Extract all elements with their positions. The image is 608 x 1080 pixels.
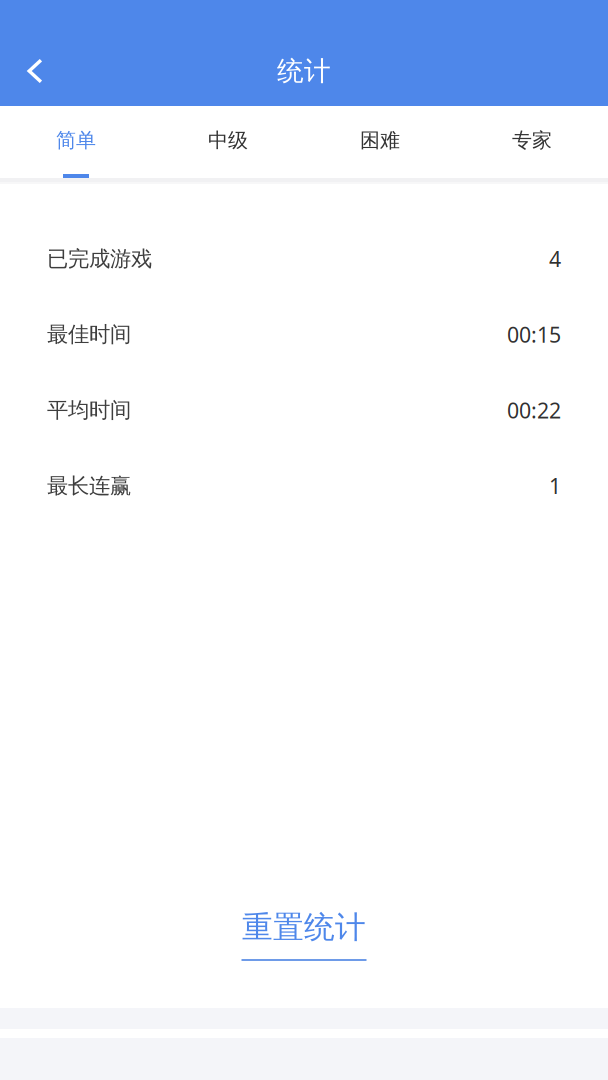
staticText: 00:22 — [507, 396, 561, 424]
button[interactable]: 重置统计 — [223, 908, 384, 975]
staticText: 平均时间 — [47, 397, 131, 423]
staticText: 1 — [549, 472, 561, 500]
button[interactable]: 困难 — [304, 106, 456, 178]
staticText: 困难 — [360, 128, 400, 153]
staticText: 专家 — [512, 128, 552, 153]
staticText: 重置统计 — [242, 908, 366, 946]
staticText: 4 — [549, 245, 561, 273]
button[interactable]: 简单 — [0, 106, 152, 178]
staticText: 最长连赢 — [47, 473, 131, 499]
staticText: 已完成游戏 — [47, 246, 152, 272]
staticText: 简单 — [56, 128, 96, 153]
button[interactable]: 返回 — [0, 36, 70, 106]
button[interactable]: 专家 — [456, 106, 608, 178]
staticText: 最佳时间 — [47, 321, 131, 348]
staticText: 00:15 — [507, 320, 561, 349]
staticText: 统计 — [277, 55, 331, 87]
staticText: 中级 — [208, 128, 248, 153]
button[interactable]: 中级 — [152, 106, 304, 178]
